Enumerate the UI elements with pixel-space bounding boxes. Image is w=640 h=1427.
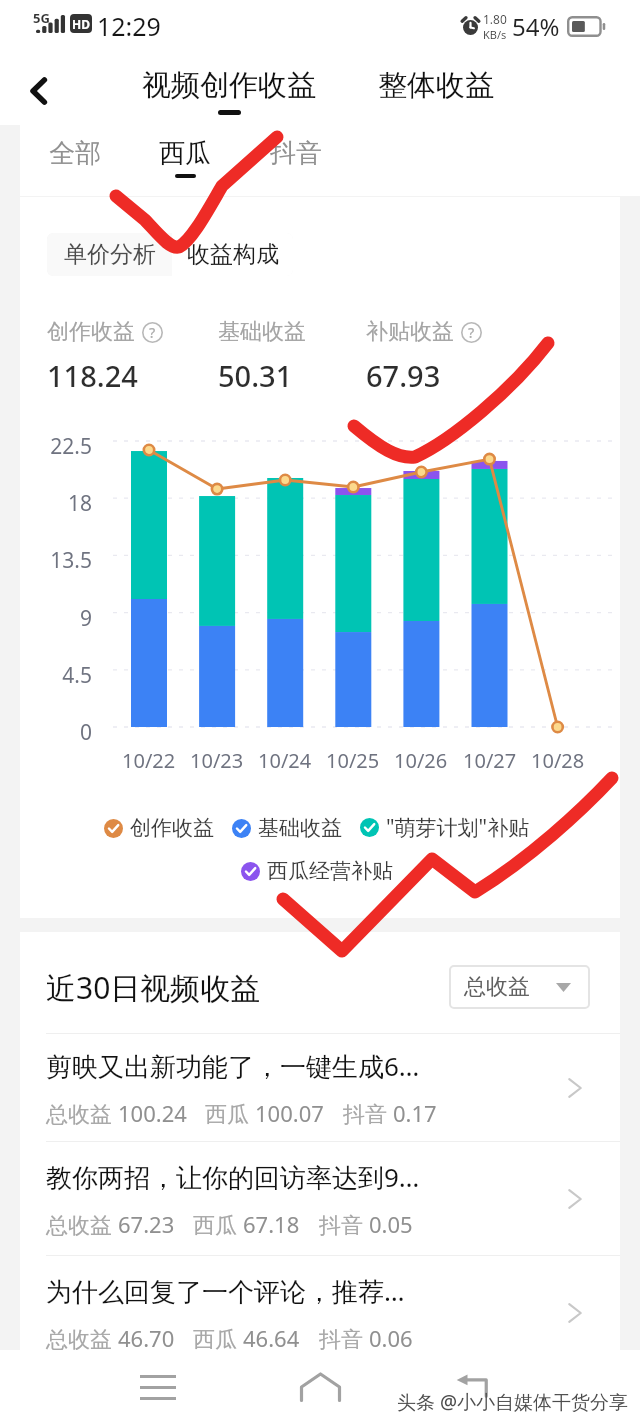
staticText: 总收益: [46, 1323, 118, 1353]
staticText: "萌芽计划"补贴: [386, 813, 530, 842]
staticText: 54%: [512, 10, 560, 43]
button[interactable]: 收益构成: [172, 233, 293, 276]
staticText: 67.18: [243, 1209, 300, 1239]
staticText: 0: [20, 718, 92, 747]
staticText: 视频创作收益: [142, 67, 316, 104]
staticText: 创作收益: [47, 318, 135, 346]
button[interactable]: Back: [12, 64, 66, 118]
staticText: 近30日视频收益: [46, 967, 261, 1008]
staticText: 单价分析: [64, 240, 156, 269]
staticText: KB/s: [483, 27, 507, 42]
button[interactable]: Home: [290, 1357, 350, 1417]
staticText: 13.5: [20, 546, 92, 575]
staticText: ?: [149, 323, 156, 342]
staticText: 100.07: [255, 1098, 324, 1128]
staticText: 10/24: [258, 747, 312, 774]
staticText: 10/28: [531, 747, 585, 774]
button[interactable]: Back: [444, 1357, 504, 1417]
button[interactable]: 教你两招，让你的回访率达到9…: [20, 1142, 620, 1255]
staticText: 9: [20, 604, 92, 633]
button[interactable]: 全部: [43, 133, 107, 182]
staticText: 抖音: [270, 137, 322, 170]
button[interactable]: 西瓜: [153, 133, 217, 182]
staticText: 18: [20, 489, 92, 518]
staticText: 抖音: [319, 1209, 369, 1239]
staticText: 抖音: [319, 1323, 369, 1353]
staticText: 118.24: [47, 356, 138, 395]
staticText: 基础收益: [258, 815, 342, 841]
staticText: 西瓜: [193, 1323, 243, 1353]
staticText: 100.24: [118, 1098, 187, 1128]
staticText: 为什么回复了一个评论，推荐…: [46, 1273, 405, 1309]
staticText: 46.70: [118, 1323, 175, 1353]
staticText: 0.05: [369, 1209, 413, 1239]
staticText: 收益构成: [187, 240, 279, 269]
staticText: 0.06: [369, 1323, 413, 1353]
staticText: 50.31: [218, 356, 293, 395]
button[interactable]: 为什么回复了一个评论，推荐…: [20, 1256, 620, 1369]
button[interactable]: Recents: [128, 1357, 188, 1417]
staticText: 22.5: [20, 432, 92, 461]
staticText: 10/26: [394, 747, 448, 774]
staticText: 补贴收益: [366, 318, 454, 346]
button[interactable]: 基础收益: [232, 815, 342, 841]
staticText: 抖音: [343, 1098, 393, 1128]
button[interactable]: 抖音: [264, 133, 328, 182]
button[interactable]: 总收益: [449, 965, 590, 1009]
button[interactable]: 创作收益: [104, 815, 214, 841]
button[interactable]: "萌芽计划"补贴: [360, 813, 530, 842]
staticText: 创作收益: [130, 815, 214, 841]
staticText: HD: [72, 16, 90, 32]
staticText: 0.17: [393, 1098, 437, 1128]
staticText: 46.64: [243, 1323, 300, 1353]
button[interactable]: 西瓜经营补贴: [241, 858, 393, 884]
staticText: 整体收益: [378, 67, 494, 104]
staticText: 10/22: [122, 747, 176, 774]
button[interactable]: 视频创作收益: [136, 67, 322, 115]
staticText: 10/23: [190, 747, 244, 774]
staticText: 10/27: [463, 747, 517, 774]
button[interactable]: 单价分析: [47, 233, 172, 276]
staticText: 西瓜经营补贴: [267, 858, 393, 884]
staticText: 剪映又出新功能了，一键生成6…: [46, 1048, 420, 1084]
staticText: 5G: [33, 9, 50, 27]
staticText: 总收益: [46, 1098, 118, 1128]
button[interactable]: 整体收益: [372, 67, 500, 104]
button[interactable]: 剪映又出新功能了，一键生成6…: [20, 1034, 620, 1141]
staticText: 总收益: [46, 1209, 118, 1239]
staticText: 12:29: [97, 9, 161, 43]
staticText: 10/25: [326, 747, 380, 774]
staticText: 67.23: [118, 1209, 175, 1239]
staticText: 头条 @小小自媒体干货分享: [397, 1389, 629, 1415]
staticText: 4.5: [20, 661, 92, 690]
staticText: 1.80: [483, 11, 507, 27]
staticText: 西瓜: [205, 1098, 255, 1128]
staticText: ?: [468, 323, 475, 342]
staticText: 教你两招，让你的回访率达到9…: [46, 1159, 420, 1195]
staticText: 西瓜: [159, 137, 211, 170]
staticText: 总收益: [464, 973, 530, 1001]
staticText: 全部: [49, 137, 101, 170]
staticText: 西瓜: [193, 1209, 243, 1239]
staticText: 基础收益: [218, 318, 306, 346]
staticText: 67.93: [366, 356, 441, 395]
